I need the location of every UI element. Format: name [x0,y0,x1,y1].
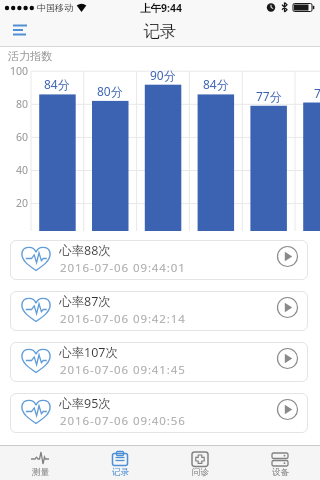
button[interactable]: 问诊 [160,445,240,480]
button[interactable]: 心率88次 [10,240,308,280]
staticText: 2016-07-06 09:44:01 [60,260,186,276]
button[interactable]: 记录 [80,445,160,480]
button[interactable]: 心率95次 [10,393,308,433]
staticText: 20 [16,196,29,210]
staticText: 心率88次 [59,242,111,259]
staticText: 设备 [272,467,289,478]
staticText: 问诊 [192,467,209,478]
staticText: 2016-07-06 09:41:45 [60,362,186,378]
button[interactable]: 设备 [240,445,320,480]
button[interactable] [271,393,304,426]
staticText: 84分 [44,76,70,92]
button[interactable] [6,17,34,43]
button[interactable] [271,342,304,375]
staticText: 79分 [314,85,320,101]
staticText: 100 [10,64,29,78]
staticText: 60 [16,130,29,144]
staticText: 2016-07-06 09:42:14 [60,311,186,327]
staticText: 中国移动 [37,2,73,13]
button[interactable] [271,291,304,324]
staticText: 80分 [97,83,123,99]
staticText: 上午9:44 [135,1,187,15]
staticText: 90分 [150,67,176,83]
staticText: 记录 [112,467,129,478]
staticText: 心率95次 [59,395,111,412]
button[interactable] [271,240,304,273]
staticText: 80 [16,97,29,111]
staticText: 心率107次 [59,344,118,361]
staticText: 活力指数 [8,49,52,63]
button[interactable]: 心率107次 [10,342,308,382]
staticText: 84分 [203,76,229,92]
button[interactable]: 心率87次 [10,291,308,331]
button[interactable]: 测量 [0,445,80,480]
staticText: 测量 [32,467,49,478]
staticText: 心率87次 [59,293,111,310]
staticText: 77分 [256,88,282,104]
staticText: 40 [16,163,29,177]
staticText: 2016-07-06 09:40:56 [60,413,186,429]
staticText: 记录 [130,21,190,42]
